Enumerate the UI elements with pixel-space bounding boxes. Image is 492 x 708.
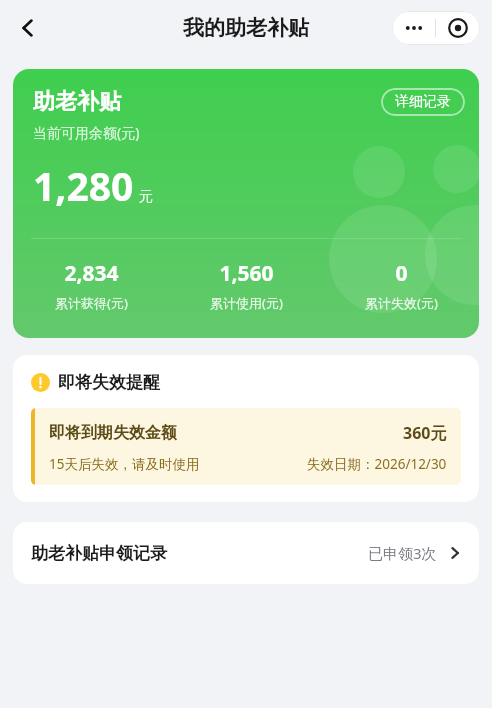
button[interactable]: 1,560 <box>169 259 324 312</box>
button[interactable]: 2,834 <box>13 259 169 312</box>
staticText: 累计获得(元) <box>55 294 128 312</box>
staticText: 助老补贴申领记录 <box>31 543 167 564</box>
staticText: 即将到期失效金额 <box>49 423 177 443</box>
button[interactable]: 即将失效提醒 <box>13 355 479 502</box>
staticText: 当前可用余额(元) <box>33 123 140 142</box>
button[interactable]: 助老补贴申领记录 <box>13 522 479 584</box>
staticText: 已申领3次 <box>368 543 437 563</box>
staticText: 失效日期：2026/12/30 <box>307 455 447 473</box>
staticText: 详细记录 <box>395 93 451 111</box>
staticText: 累计失效(元) <box>365 294 438 312</box>
button[interactable]: Back <box>6 6 50 50</box>
staticText: 0 <box>395 259 408 288</box>
staticText: 2,834 <box>64 259 119 288</box>
staticText: 助老补贴 <box>33 88 121 116</box>
staticText: 1,280 <box>33 159 134 212</box>
staticText: 我的助老补贴 <box>183 15 309 41</box>
staticText: 即将失效提醒 <box>58 372 160 393</box>
button[interactable]: 助老补贴 <box>13 69 479 338</box>
staticText: 累计使用(元) <box>210 294 283 312</box>
button[interactable]: Close <box>436 11 480 45</box>
staticText: 360元 <box>403 422 447 444</box>
staticText: 元 <box>139 188 153 206</box>
button[interactable]: 详细记录 <box>381 88 465 116</box>
staticText: 1,560 <box>219 259 274 288</box>
button[interactable]: More <box>392 11 435 45</box>
button[interactable]: 0 <box>324 259 479 312</box>
staticText: 15天后失效，请及时使用 <box>49 455 200 473</box>
